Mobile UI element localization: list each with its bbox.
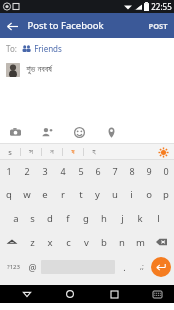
button[interactable]: 7 <box>106 160 123 182</box>
staticText: v <box>84 236 89 249</box>
button[interactable]: 3 <box>36 160 54 182</box>
staticText: 9 <box>146 165 152 177</box>
staticText: x <box>47 236 53 249</box>
button[interactable]: 1 <box>0 160 18 182</box>
button[interactable]: t <box>72 182 89 206</box>
staticText: 6 <box>95 165 101 177</box>
button[interactable]: x <box>41 230 59 254</box>
staticText: s <box>30 212 35 225</box>
button[interactable]: . <box>115 254 133 280</box>
button[interactable]: d <box>41 206 59 230</box>
button[interactable]: j <box>113 206 131 230</box>
staticText: z <box>30 236 35 249</box>
staticText: 3 <box>42 165 48 177</box>
staticText: e <box>42 188 48 201</box>
staticText: 2 <box>24 165 30 177</box>
button[interactable]: 8 <box>123 160 140 182</box>
button[interactable]: Back <box>18 285 36 303</box>
button[interactable]: c <box>59 230 77 254</box>
button[interactable]: স <box>21 144 41 160</box>
staticText: To: <box>6 43 17 54</box>
button[interactable]: l <box>149 206 167 230</box>
button[interactable]: o <box>140 182 157 206</box>
staticText: Post to Facebook <box>27 19 104 32</box>
button[interactable]: POST <box>148 21 168 31</box>
staticText: u <box>112 188 118 201</box>
button[interactable]: Backspace <box>149 230 174 254</box>
button[interactable]: w <box>18 182 36 206</box>
button[interactable]: 4 <box>54 160 72 182</box>
button[interactable]: Keyboard settings <box>157 146 169 158</box>
staticText: f <box>66 212 70 225</box>
button[interactable]: y <box>89 182 106 206</box>
staticText: 5 <box>78 165 84 177</box>
staticText: ?123 <box>7 263 20 271</box>
staticText: n <box>119 236 125 249</box>
button[interactable]: 6 <box>89 160 106 182</box>
button[interactable]: k <box>131 206 149 230</box>
staticText: স <box>29 148 33 156</box>
button[interactable]: Switch keyboard <box>148 285 166 303</box>
button[interactable]: h <box>95 206 113 230</box>
button[interactable]: ?123 <box>3 254 23 280</box>
staticText: k <box>137 212 143 225</box>
button[interactable]: Shift <box>0 230 24 254</box>
staticText: 7 <box>112 165 118 177</box>
button[interactable]: Home <box>61 285 79 303</box>
button[interactable]: Enter <box>151 257 171 277</box>
button[interactable]: 5 <box>72 160 89 182</box>
button[interactable]: @ <box>23 254 41 280</box>
button[interactable]: 9 <box>140 160 157 182</box>
button[interactable]: s <box>0 144 20 160</box>
button[interactable]: ,; <box>133 254 151 280</box>
staticText: l <box>157 212 160 225</box>
button[interactable]: g <box>77 206 95 230</box>
button[interactable]: i <box>123 182 140 206</box>
button[interactable]: Back <box>0 14 24 38</box>
button[interactable]: u <box>106 182 123 206</box>
staticText: POST <box>148 21 168 31</box>
staticText: 8 <box>129 165 135 177</box>
staticText: শুভ নববর্ষ <box>26 63 52 75</box>
button[interactable]: Tag people <box>40 125 55 140</box>
button[interactable]: p <box>157 182 174 206</box>
button[interactable]: a <box>7 206 24 230</box>
button[interactable]: Friends <box>22 43 62 54</box>
button[interactable]: r <box>54 182 72 206</box>
button[interactable]: Add photo <box>8 125 23 140</box>
button[interactable]: 2 <box>18 160 36 182</box>
staticText: q <box>6 188 12 201</box>
staticText: Friends <box>34 43 62 54</box>
staticText: t <box>79 188 83 201</box>
staticText: d <box>47 212 53 225</box>
button[interactable]: b <box>95 230 113 254</box>
staticText: হ <box>92 148 96 156</box>
button[interactable]: e <box>36 182 54 206</box>
button[interactable]: 0 <box>157 160 174 182</box>
staticText: b <box>101 236 107 249</box>
button[interactable]: হ <box>84 144 104 160</box>
staticText: @ <box>28 261 37 273</box>
button[interactable]: Recent apps <box>105 285 123 303</box>
staticText: c <box>66 236 71 249</box>
staticText: h <box>101 212 107 225</box>
button[interactable]: s <box>24 206 41 230</box>
button[interactable]: ন <box>42 144 62 160</box>
staticText: 0 <box>163 165 169 177</box>
button[interactable]: f <box>59 206 77 230</box>
staticText: r <box>61 188 65 201</box>
staticText: s <box>8 147 12 157</box>
button[interactable]: z <box>24 230 41 254</box>
button[interactable]: m <box>131 230 149 254</box>
staticText: i <box>130 188 133 201</box>
staticText: p <box>163 188 169 201</box>
staticText: o <box>146 188 152 201</box>
button[interactable]: v <box>77 230 95 254</box>
button[interactable]: n <box>113 230 131 254</box>
button[interactable]: q <box>0 182 18 206</box>
button[interactable]: ষ <box>63 144 83 160</box>
staticText: g <box>83 212 89 225</box>
button[interactable]: Add feeling <box>72 125 87 140</box>
button[interactable]: Add location <box>104 125 119 140</box>
